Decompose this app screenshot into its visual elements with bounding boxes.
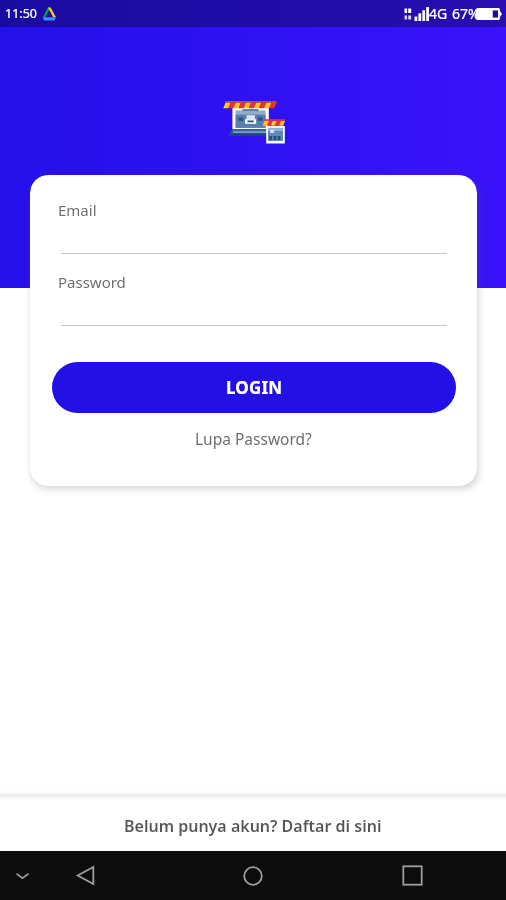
staticText: 4G — [429, 4, 448, 23]
staticText: Belum punya akun? Daftar di sini — [124, 815, 382, 837]
button[interactable]: Lupa Password? — [185, 424, 322, 453]
staticText: 11:50 — [5, 5, 37, 22]
button[interactable]: Email — [55, 195, 451, 254]
button[interactable]: Belum punya akun? Daftar di sini — [0, 800, 506, 851]
button[interactable]: Home — [242, 865, 264, 887]
button[interactable]: Back — [74, 864, 97, 887]
staticText: Password — [58, 272, 126, 292]
button[interactable]: Recent apps — [401, 864, 424, 887]
staticText: 67% — [452, 4, 480, 23]
button[interactable]: Password — [55, 267, 451, 326]
staticText: LOGIN — [226, 376, 283, 399]
staticText: Lupa Password? — [195, 428, 312, 449]
button[interactable]: LOGIN — [52, 362, 456, 413]
button[interactable]: Hide keyboard — [14, 867, 31, 884]
staticText: Email — [58, 200, 97, 220]
